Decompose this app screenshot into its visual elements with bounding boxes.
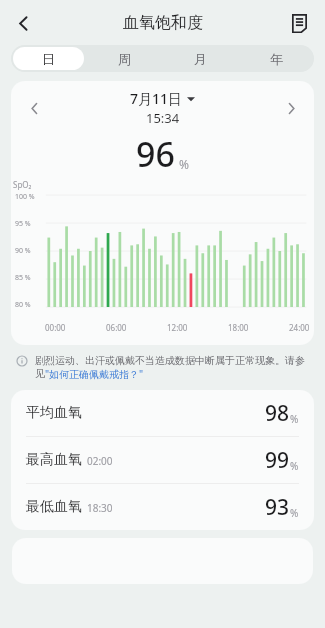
- staticText: 24:00: [289, 322, 310, 333]
- staticText: 98: [265, 399, 290, 428]
- staticText: 80 %: [15, 300, 31, 310]
- button[interactable]: 年: [240, 47, 312, 70]
- staticText: 00:00: [45, 322, 66, 333]
- staticText: 99: [265, 446, 290, 475]
- staticText: 日: [42, 51, 55, 67]
- staticText: 90 %: [15, 246, 31, 256]
- staticText: 18:30: [87, 501, 113, 515]
- button[interactable]: 最低血氧: [11, 484, 314, 530]
- button[interactable]: 月: [164, 47, 236, 70]
- staticText: %: [290, 506, 299, 520]
- staticText: %: [290, 459, 299, 473]
- staticText: 06:00: [106, 322, 127, 333]
- button[interactable]: 最高血氧: [11, 437, 314, 483]
- button[interactable]: Records: [280, 4, 318, 42]
- staticText: 85 %: [15, 273, 31, 283]
- staticText: 96: [136, 131, 175, 177]
- button[interactable]: 7月11日: [130, 89, 195, 108]
- staticText: 18:00: [228, 322, 249, 333]
- button[interactable]: 日: [13, 47, 84, 70]
- button[interactable]: 周: [88, 47, 160, 70]
- button[interactable]: Back: [4, 4, 42, 42]
- staticText: 最高血氧: [26, 451, 82, 469]
- staticText: 95 %: [15, 219, 31, 229]
- staticText: 7月11日: [130, 89, 183, 108]
- staticText: 12:00: [167, 322, 188, 333]
- staticText: %: [179, 156, 189, 172]
- staticText: 100 %: [15, 192, 35, 202]
- staticText: SpO₂: [13, 179, 32, 190]
- button[interactable]: Next day: [276, 93, 306, 123]
- staticText: 见: [35, 367, 45, 380]
- button[interactable]: 平均血氧: [11, 390, 314, 436]
- staticText: %: [290, 412, 299, 426]
- staticText: 15:34: [146, 109, 180, 127]
- staticText: 月: [194, 51, 207, 67]
- staticText: 平均血氧: [26, 404, 82, 422]
- staticText: 年: [270, 51, 283, 67]
- button[interactable]: Previous day: [19, 93, 49, 123]
- staticText: 血氧饱和度: [123, 13, 203, 33]
- staticText: 剧烈运动、出汗或佩戴不当造成数据中断属于正常现象。请参: [35, 354, 305, 367]
- staticText: 93: [265, 493, 290, 522]
- staticText: 最低血氧: [26, 498, 82, 516]
- staticText: 周: [118, 51, 131, 67]
- button[interactable]: "如何正确佩戴戒指？": [45, 367, 144, 381]
- staticText: 02:00: [87, 454, 113, 468]
